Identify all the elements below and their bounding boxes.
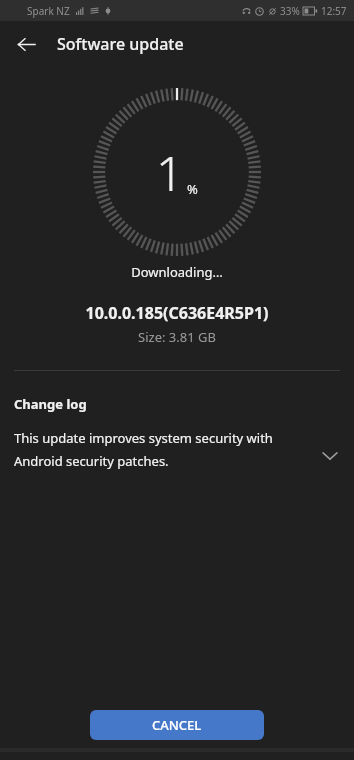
button[interactable]: This update improves system security wit…: [0, 429, 354, 470]
button[interactable]: CANCEL: [90, 710, 264, 740]
staticText: 33%: [280, 4, 300, 18]
staticText: 12:57: [321, 4, 347, 18]
staticText: %: [187, 180, 198, 198]
staticText: Downloading…: [0, 263, 354, 281]
staticText: 10.0.0.185(C636E4R5P1): [0, 302, 354, 324]
staticText: Size: 3.81 GB: [0, 328, 354, 346]
staticText: This update improves system security wit…: [14, 429, 316, 470]
button[interactable]: Back: [8, 26, 44, 62]
staticText: Change log: [14, 395, 87, 413]
other: Expand change log: [316, 442, 344, 470]
staticText: CANCEL: [152, 716, 202, 734]
staticText: 1: [156, 140, 184, 205]
staticText: Software update: [57, 33, 184, 55]
staticText: Spark NZ: [27, 4, 70, 18]
